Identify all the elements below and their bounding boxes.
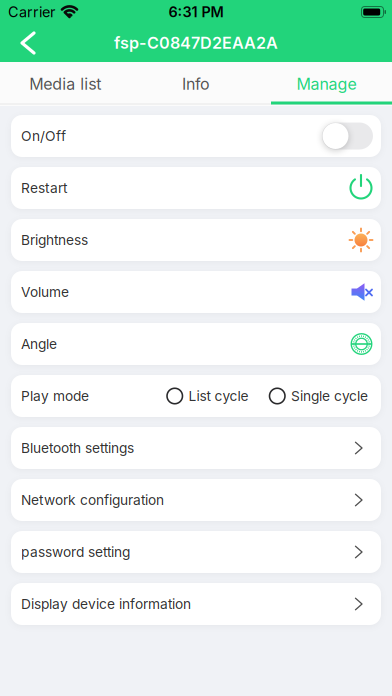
button[interactable]: List cycle bbox=[167, 388, 248, 404]
button[interactable]: Manage bbox=[261, 63, 392, 104]
button[interactable]: password setting bbox=[11, 531, 381, 573]
button[interactable]: Info bbox=[131, 63, 261, 104]
button[interactable]: Media list bbox=[0, 63, 131, 104]
staticText: Info bbox=[182, 74, 210, 94]
staticText: Play mode bbox=[21, 388, 89, 404]
button[interactable]: Bluetooth settings bbox=[11, 427, 381, 469]
button[interactable]: Angle bbox=[11, 323, 381, 365]
staticText: List cycle bbox=[188, 388, 248, 404]
staticText: Restart bbox=[21, 180, 67, 196]
staticText: Network configuration bbox=[21, 492, 164, 508]
button[interactable]: Volume bbox=[11, 271, 381, 313]
button[interactable]: Restart bbox=[11, 167, 381, 209]
staticText: Media list bbox=[29, 74, 101, 94]
staticText: Bluetooth settings bbox=[21, 440, 134, 456]
button[interactable]: Network configuration bbox=[11, 479, 381, 521]
staticText: Volume bbox=[21, 284, 69, 300]
staticText: password setting bbox=[21, 544, 130, 560]
staticText: Manage bbox=[297, 74, 357, 94]
button[interactable]: Back bbox=[0, 27, 44, 59]
staticText: Single cycle bbox=[291, 388, 368, 404]
staticText: Angle bbox=[21, 336, 57, 352]
staticText: Brightness bbox=[21, 232, 88, 248]
button[interactable]: Brightness bbox=[11, 219, 381, 261]
staticText: 6:31 PM bbox=[168, 3, 223, 21]
staticText: Carrier bbox=[8, 3, 55, 21]
staticText: On/Off bbox=[21, 128, 66, 144]
staticText: fsp-C0847D2EAA2A bbox=[114, 33, 278, 53]
staticText: Display device information bbox=[21, 596, 191, 612]
button[interactable]: On/Off bbox=[322, 122, 373, 149]
button[interactable]: Single cycle bbox=[269, 388, 368, 404]
button[interactable]: Display device information bbox=[11, 583, 381, 625]
